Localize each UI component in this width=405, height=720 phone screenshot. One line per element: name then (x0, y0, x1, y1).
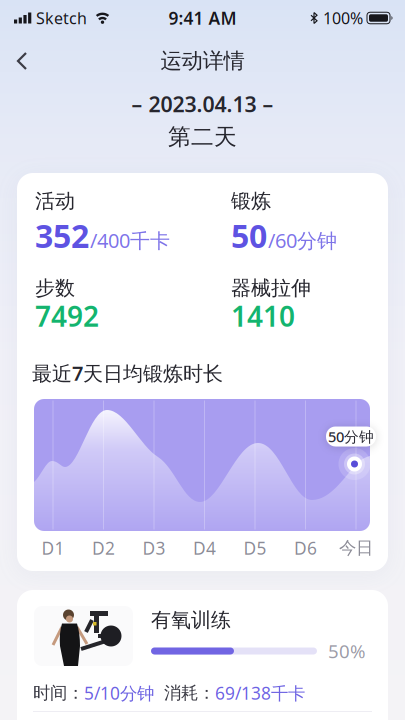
staticText: 100% (323, 7, 363, 29)
staticText: 锻炼 (231, 189, 271, 213)
staticText: – 2023.04.13 – (131, 90, 273, 118)
staticText: 7492 (35, 297, 99, 335)
staticText: 第二天 (168, 123, 237, 151)
staticText: 50% (328, 639, 366, 663)
staticText: 50 (231, 214, 267, 257)
staticText: /60分钟 (268, 227, 337, 253)
staticText: D5 (243, 536, 266, 559)
staticText: 运动详情 (160, 48, 244, 74)
staticText: 消耗： (164, 682, 215, 704)
staticText: 有氧训练 (151, 608, 231, 632)
staticText: 最近7天日均锻炼时长 (32, 360, 223, 386)
staticText: /400千卡 (90, 227, 170, 253)
staticText: D4 (193, 536, 216, 559)
staticText: 今日 (339, 537, 373, 559)
staticText: D3 (142, 536, 165, 559)
staticText: 1410 (231, 297, 295, 335)
staticText: D6 (294, 536, 317, 559)
staticText: 器械拉伸 (231, 276, 311, 300)
button[interactable]: 有氧训练 (17, 590, 388, 676)
staticText: D1 (41, 536, 64, 559)
staticText: 352 (35, 214, 89, 257)
button[interactable]: Back (0, 36, 41, 86)
staticText: 9:41 AM (168, 6, 236, 29)
staticText: Sketch (36, 7, 87, 29)
staticText: 时间： (33, 682, 84, 704)
staticText: 步数 (35, 276, 75, 300)
staticText: 活动 (35, 189, 75, 213)
staticText: 50分钟 (328, 427, 374, 446)
staticText: 69/138千卡 (215, 681, 305, 704)
staticText: D2 (92, 536, 115, 559)
staticText: 5/10分钟 (84, 681, 154, 704)
